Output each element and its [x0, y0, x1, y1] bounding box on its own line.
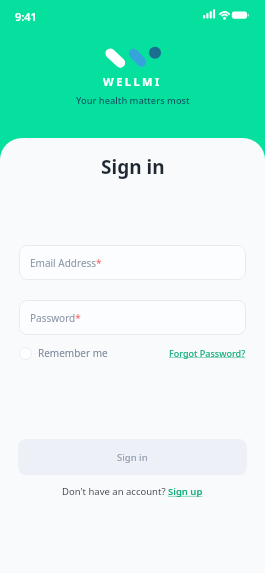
staticText: Remember me	[38, 346, 108, 360]
button[interactable]: Sign in	[18, 439, 247, 475]
button[interactable]: Forgot Password?	[169, 347, 246, 359]
staticText: Email Address*	[30, 256, 102, 270]
staticText: 9:41	[15, 9, 37, 24]
button[interactable]: Remember me	[19, 346, 108, 360]
button[interactable]: Password*	[19, 300, 246, 335]
staticText: Don't have an account? Sign up	[62, 485, 203, 498]
staticText: Sign in	[117, 451, 148, 464]
staticText: Your health matters most	[76, 94, 190, 107]
staticText: Forgot Password?	[169, 347, 246, 359]
button[interactable]: Email Address*	[19, 245, 246, 280]
button[interactable]: Don't have an account? Sign up	[0, 485, 265, 498]
staticText: Sign in	[101, 154, 165, 180]
staticText: WELLMI	[103, 74, 162, 89]
staticText: Password*	[30, 311, 81, 325]
